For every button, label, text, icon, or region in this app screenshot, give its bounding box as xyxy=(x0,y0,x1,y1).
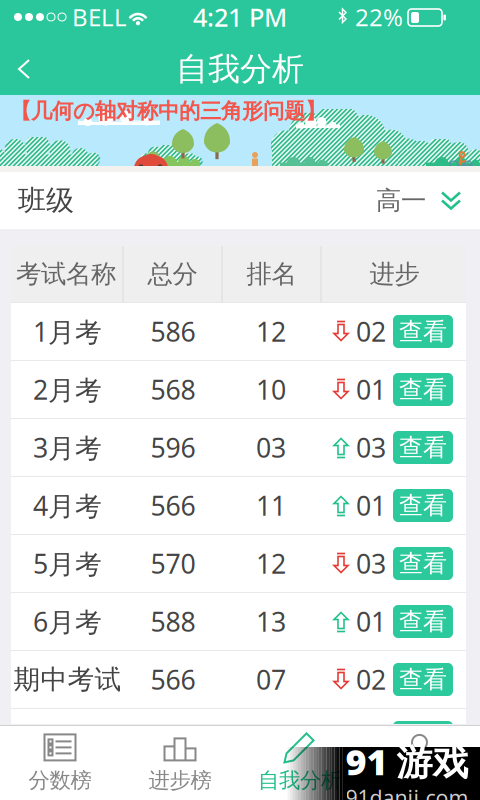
staticText: 班级 xyxy=(18,183,74,218)
staticText: 考试名称 xyxy=(16,258,116,289)
staticText: 查看 xyxy=(399,665,447,694)
staticText: 4月考 xyxy=(33,488,102,523)
staticText: BELL xyxy=(72,1,127,33)
staticText: 进步榜 xyxy=(148,767,211,794)
staticText: 12 xyxy=(256,314,286,349)
staticText: 查看 xyxy=(399,433,447,462)
staticText: 查看 xyxy=(399,723,447,752)
staticText: 期末考试 xyxy=(13,721,121,754)
staticText: 13 xyxy=(256,604,286,639)
staticText: 590 xyxy=(150,720,195,755)
staticText: 02 xyxy=(356,662,386,697)
staticText: 10 xyxy=(256,372,286,407)
staticText: 566 xyxy=(150,488,195,523)
staticText: 查看 xyxy=(399,549,447,578)
staticText: 01 xyxy=(356,604,386,639)
staticText: 总分 xyxy=(147,258,197,289)
staticText: 91danji.com xyxy=(345,783,468,800)
staticText: 03 xyxy=(356,546,386,581)
staticText: 进步 xyxy=(369,258,419,289)
button[interactable]: 自我分析 xyxy=(240,725,360,800)
staticText: 查看 xyxy=(399,607,447,636)
staticText: 查看 xyxy=(399,375,447,404)
staticText: 期中考试 xyxy=(13,663,121,696)
staticText: 自我分析 xyxy=(176,49,304,89)
button[interactable]: 查看 xyxy=(393,373,453,406)
staticText: 自我分析 xyxy=(258,767,342,794)
staticText: 01 xyxy=(356,372,386,407)
staticText: 12 xyxy=(256,546,286,581)
button[interactable]: 查看 xyxy=(393,315,453,348)
staticText: 03 xyxy=(356,430,386,465)
staticText: 570 xyxy=(150,546,195,581)
staticText: 596 xyxy=(150,430,195,465)
staticText: 6月考 xyxy=(33,604,102,639)
button[interactable]: 班级 xyxy=(0,172,480,229)
staticText: 查看 xyxy=(399,491,447,520)
button[interactable]: 我的 xyxy=(360,725,480,800)
staticText: 566 xyxy=(150,662,195,697)
staticText: 91 游戏 xyxy=(345,737,468,785)
staticText: 我的 xyxy=(399,767,441,794)
staticText: 分数榜 xyxy=(28,767,91,794)
button[interactable]: 查看 xyxy=(393,605,453,638)
staticText: 4:21 PM xyxy=(193,0,287,34)
staticText: 高一 xyxy=(376,185,426,216)
staticText: 07 xyxy=(256,662,286,697)
staticText: 3月考 xyxy=(33,430,102,465)
staticText: 05 xyxy=(256,720,286,755)
button[interactable]: 分数榜 xyxy=(0,725,120,800)
staticText: 11 xyxy=(256,488,286,523)
button[interactable]: 查看 xyxy=(393,547,453,580)
button[interactable]: 进步榜 xyxy=(120,725,240,800)
staticText: 588 xyxy=(150,604,195,639)
staticText: 查看 xyxy=(399,317,447,346)
button[interactable]: 返回 xyxy=(0,45,49,93)
staticText: 586 xyxy=(150,314,195,349)
staticText: 03 xyxy=(256,430,286,465)
staticText: 568 xyxy=(150,372,195,407)
staticText: 02 xyxy=(356,314,386,349)
staticText: 【几何の轴对称中的三角形问题】 xyxy=(10,98,326,124)
staticText: 22% xyxy=(355,1,403,33)
staticText: 01 xyxy=(356,720,386,755)
staticText: 排名 xyxy=(246,258,296,289)
button[interactable]: 查看 xyxy=(393,489,453,522)
staticText: 5月考 xyxy=(33,546,102,581)
staticText: 2月考 xyxy=(33,372,102,407)
button[interactable]: 查看 xyxy=(393,431,453,464)
staticText: 01 xyxy=(356,488,386,523)
button[interactable]: 查看 xyxy=(393,721,453,754)
button[interactable]: 查看 xyxy=(393,663,453,696)
staticText: 1月考 xyxy=(33,314,102,349)
